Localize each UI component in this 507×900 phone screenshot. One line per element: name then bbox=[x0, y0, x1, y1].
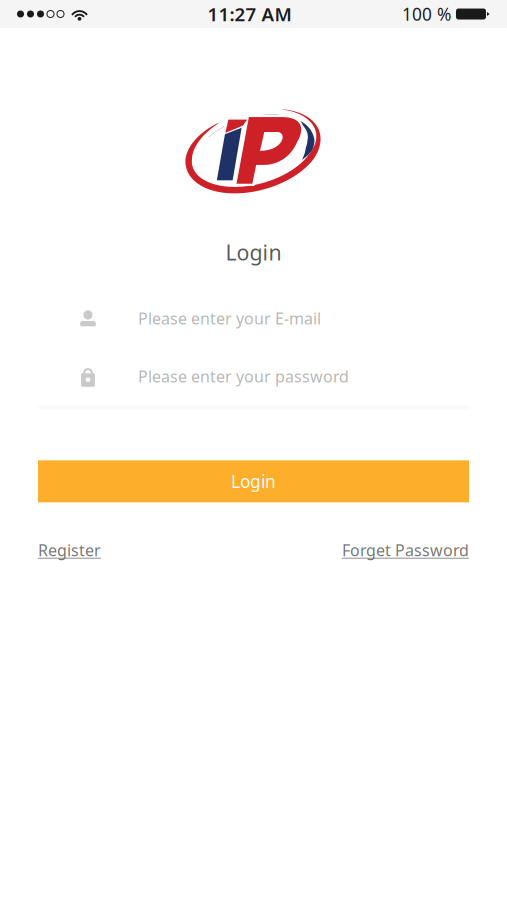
button[interactable]: Please enter your password bbox=[38, 347, 469, 405]
staticText: Please enter your password bbox=[138, 366, 349, 387]
button[interactable]: Login bbox=[38, 460, 469, 502]
button[interactable]: Please enter your E-mail bbox=[38, 289, 469, 347]
button[interactable]: Register bbox=[38, 539, 101, 560]
staticText: Forget Password bbox=[342, 539, 469, 560]
staticText: Login bbox=[231, 470, 276, 493]
staticText: Please enter your E-mail bbox=[138, 308, 321, 329]
staticText: Login bbox=[225, 238, 281, 266]
button[interactable]: Forget Password bbox=[342, 539, 469, 560]
staticText: 100 % bbox=[402, 2, 451, 25]
staticText: 11:27 AM bbox=[207, 2, 291, 26]
staticText: Register bbox=[38, 539, 101, 560]
